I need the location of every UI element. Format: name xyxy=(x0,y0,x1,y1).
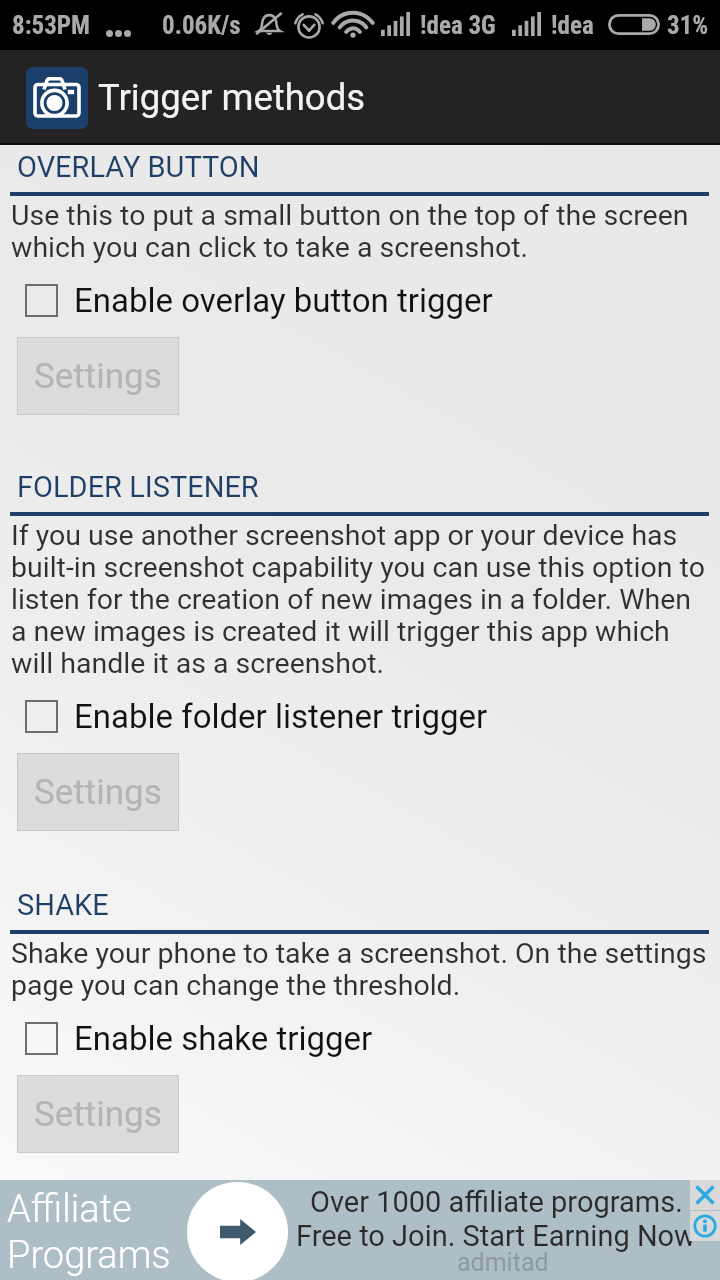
staticText: 31% xyxy=(667,11,709,40)
staticText: Shake your phone to take a screenshot. O… xyxy=(11,937,709,1002)
button[interactable]: App icon xyxy=(26,67,88,129)
button[interactable]: Settings xyxy=(17,1075,179,1153)
button[interactable]: Settings xyxy=(17,753,179,831)
staticText: Use this to put a small button on the to… xyxy=(11,199,709,264)
staticText: Settings xyxy=(34,356,162,397)
staticText: Enable shake trigger xyxy=(74,1019,373,1058)
button[interactable]: Advertisement xyxy=(0,1180,720,1280)
staticText: Enable folder listener trigger xyxy=(74,697,488,736)
button[interactable]: Close ad xyxy=(690,1180,720,1210)
staticText: Settings xyxy=(34,772,162,813)
staticText: admitad xyxy=(457,1248,549,1277)
staticText: SHAKE xyxy=(17,888,109,922)
staticText: Enable overlay button trigger xyxy=(74,281,493,320)
staticText: !dea xyxy=(551,11,594,40)
staticText: FOLDER LISTENER xyxy=(17,470,259,504)
button[interactable]: Enable overlay button trigger xyxy=(0,281,720,320)
staticText: Over 1000 affiliate programs. xyxy=(310,1185,683,1219)
button[interactable]: Enable folder listener trigger xyxy=(0,697,720,736)
staticText: 0.06K/s xyxy=(162,11,241,40)
button[interactable]: Ad info xyxy=(690,1211,720,1241)
staticText: Settings xyxy=(34,1094,162,1135)
staticText: 8:53PM xyxy=(12,11,90,40)
button[interactable]: Enable shake trigger xyxy=(0,1019,720,1058)
button[interactable]: Settings xyxy=(17,337,179,415)
staticText: Trigger methods xyxy=(98,76,366,119)
staticText: OVERLAY BUTTON xyxy=(17,150,260,184)
staticText: !dea 3G xyxy=(420,11,496,40)
staticText: Free to Join. Start Earning Now! xyxy=(296,1219,696,1253)
staticText: If you use another screenshot app or you… xyxy=(11,519,709,680)
staticText: Affiliate Programs xyxy=(7,1187,171,1277)
